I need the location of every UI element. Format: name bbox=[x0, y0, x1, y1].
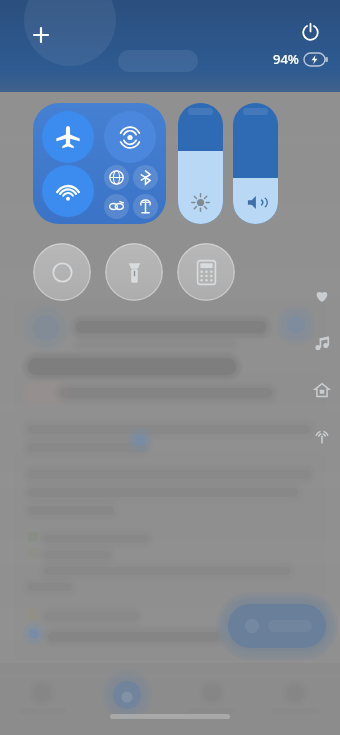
button[interactable]: Add tile bbox=[26, 20, 56, 50]
button[interactable]: Data saver bbox=[104, 194, 129, 219]
button[interactable]: Airplane mode bbox=[42, 111, 94, 163]
button[interactable]: Favorites bbox=[310, 284, 334, 308]
button[interactable]: 94% bbox=[271, 50, 330, 68]
button[interactable]: Cast bbox=[310, 425, 334, 449]
button[interactable]: Mobile network bbox=[104, 111, 156, 163]
button[interactable]: Power bbox=[294, 16, 326, 48]
button[interactable]: Bluetooth bbox=[133, 165, 158, 190]
button[interactable]: Calculator bbox=[177, 243, 235, 301]
button[interactable]: Brightness bbox=[178, 103, 223, 224]
button[interactable]: Flashlight bbox=[105, 243, 163, 301]
button[interactable]: Volume bbox=[233, 103, 278, 224]
button[interactable]: Nearby share bbox=[133, 194, 158, 219]
button[interactable]: Screen record bbox=[33, 243, 91, 301]
button[interactable]: Mobile data bbox=[104, 165, 129, 190]
button[interactable]: Wi-Fi bbox=[42, 165, 94, 217]
staticText: 94% bbox=[273, 50, 299, 68]
button[interactable]: Media bbox=[310, 331, 334, 355]
button[interactable]: Smart home bbox=[310, 378, 334, 402]
